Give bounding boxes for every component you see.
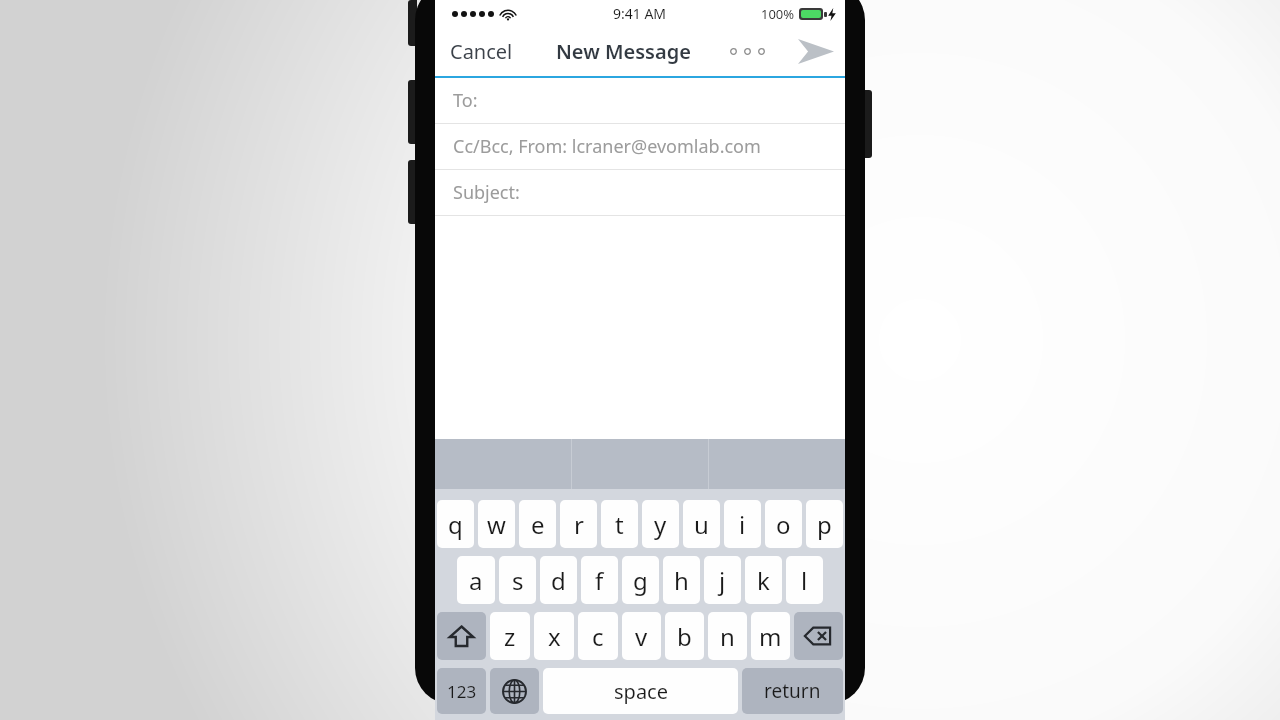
staticText: r bbox=[574, 508, 584, 541]
staticText: y bbox=[654, 508, 667, 541]
staticText: p bbox=[817, 508, 832, 541]
staticText: d bbox=[551, 564, 566, 597]
staticText: h bbox=[674, 564, 689, 597]
staticText: b bbox=[677, 620, 692, 653]
staticText: c bbox=[592, 620, 604, 653]
button[interactable]: k bbox=[745, 556, 782, 604]
button[interactable]: l bbox=[786, 556, 823, 604]
staticText: k bbox=[757, 564, 770, 597]
button[interactable]: w bbox=[478, 500, 515, 548]
button[interactable]: u bbox=[683, 500, 720, 548]
staticText: l bbox=[801, 564, 808, 597]
staticText: Cc/Bcc, From: lcraner@evomlab.com bbox=[453, 134, 761, 159]
staticText: Subject: bbox=[453, 180, 520, 205]
staticText: m bbox=[759, 620, 782, 653]
button[interactable]: Cc/Bcc, From: lcraner@evomlab.com bbox=[435, 124, 845, 169]
button[interactable]: c bbox=[578, 612, 618, 660]
staticText: f bbox=[595, 564, 604, 597]
button[interactable]: j bbox=[704, 556, 741, 604]
staticText: s bbox=[512, 564, 524, 597]
staticText: space bbox=[614, 678, 668, 705]
staticText: o bbox=[776, 508, 791, 541]
button[interactable]: h bbox=[663, 556, 700, 604]
staticText: 123 bbox=[447, 680, 477, 703]
button[interactable]: d bbox=[540, 556, 577, 604]
button[interactable]: v bbox=[622, 612, 661, 660]
button[interactable]: return bbox=[742, 668, 843, 714]
staticText: q bbox=[448, 508, 463, 541]
button[interactable]: Cancel bbox=[435, 28, 528, 75]
button[interactable]: e bbox=[519, 500, 556, 548]
staticText: v bbox=[635, 620, 648, 653]
button[interactable]: m bbox=[751, 612, 790, 660]
button[interactable]: s bbox=[499, 556, 536, 604]
button[interactable]: p bbox=[806, 500, 843, 548]
staticText: g bbox=[633, 564, 648, 597]
button[interactable]: Delete bbox=[794, 612, 843, 660]
staticText: To: bbox=[453, 88, 478, 113]
staticText: n bbox=[720, 620, 735, 653]
button[interactable]: x bbox=[534, 612, 574, 660]
button[interactable]: More options bbox=[724, 42, 771, 61]
staticText: j bbox=[719, 564, 726, 597]
staticText: New Message bbox=[556, 38, 691, 65]
button[interactable]: a bbox=[457, 556, 495, 604]
button[interactable]: Shift bbox=[437, 612, 486, 660]
button[interactable]: Send bbox=[787, 30, 845, 73]
button[interactable]: t bbox=[601, 500, 638, 548]
button[interactable]: n bbox=[708, 612, 747, 660]
button[interactable]: Change keyboard language bbox=[490, 668, 539, 714]
staticText: u bbox=[694, 508, 709, 541]
button[interactable]: f bbox=[581, 556, 618, 604]
button[interactable]: q bbox=[437, 500, 474, 548]
button[interactable]: 123 bbox=[437, 668, 486, 714]
button[interactable]: Subject: bbox=[435, 170, 845, 215]
staticText: w bbox=[487, 508, 506, 541]
button[interactable]: To: bbox=[435, 78, 845, 123]
staticText: x bbox=[548, 620, 561, 653]
button[interactable]: b bbox=[665, 612, 704, 660]
staticText: 9:41 AM bbox=[613, 4, 667, 23]
button[interactable]: g bbox=[622, 556, 659, 604]
staticText: i bbox=[739, 508, 746, 541]
button[interactable]: i bbox=[724, 500, 761, 548]
button[interactable]: r bbox=[560, 500, 597, 548]
button[interactable]: z bbox=[490, 612, 530, 660]
button[interactable]: o bbox=[765, 500, 802, 548]
button[interactable]: space bbox=[543, 668, 738, 714]
staticText: 100% bbox=[761, 5, 795, 23]
staticText: Cancel bbox=[450, 38, 513, 65]
staticText: a bbox=[469, 564, 483, 597]
staticText: t bbox=[615, 508, 624, 541]
staticText: return bbox=[764, 678, 821, 704]
button[interactable]: y bbox=[642, 500, 679, 548]
staticText: e bbox=[531, 508, 545, 541]
staticText: z bbox=[504, 620, 516, 653]
